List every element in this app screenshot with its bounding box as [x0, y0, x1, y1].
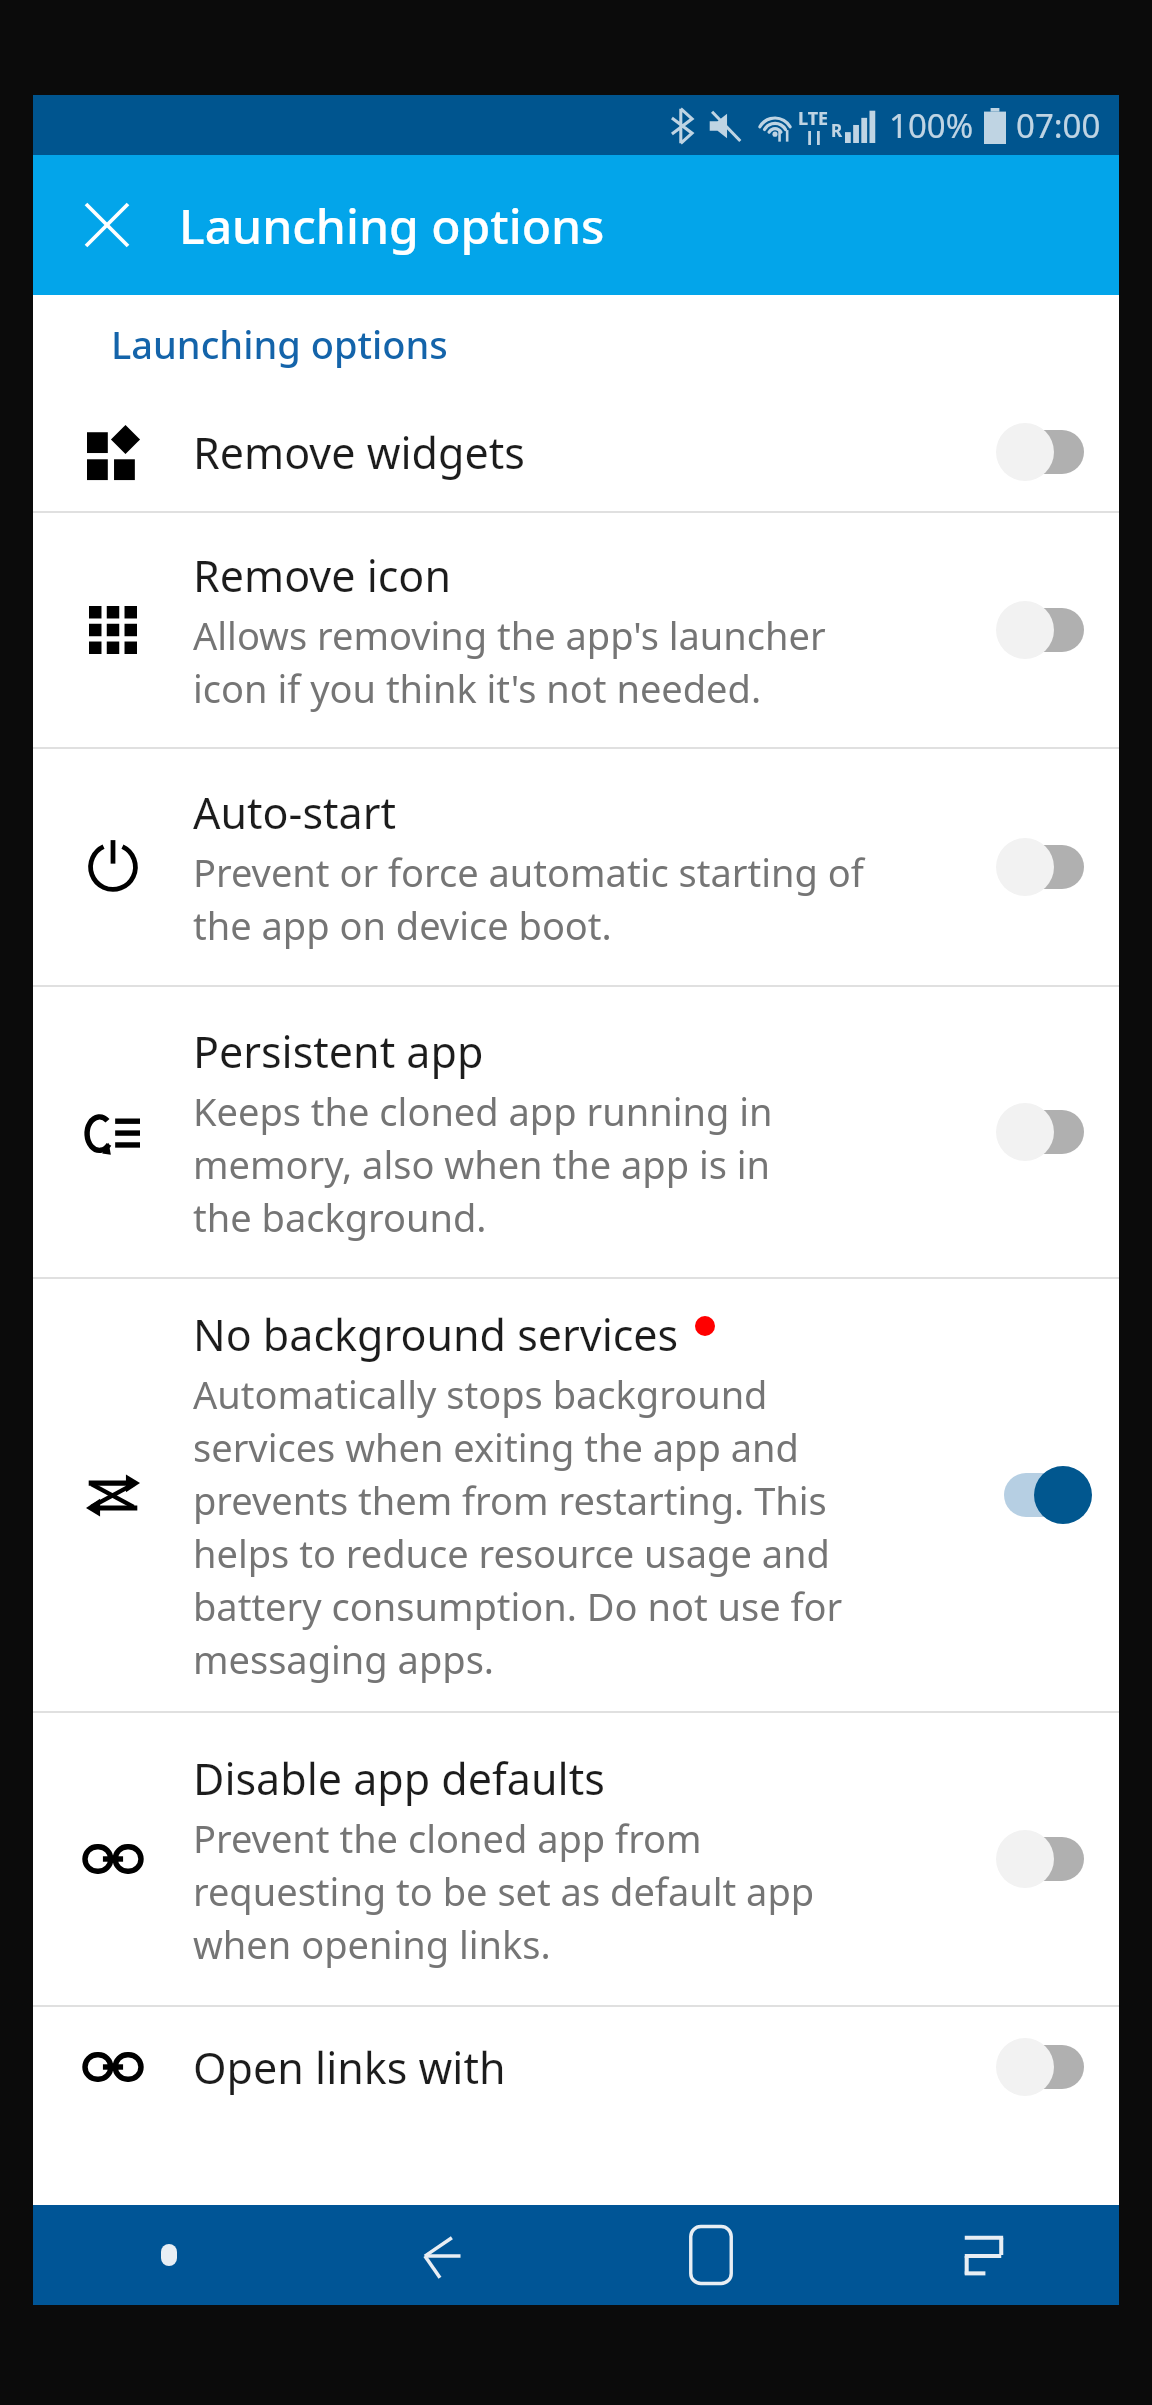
button[interactable]: Disable app defaults — [969, 1713, 1119, 2005]
staticText: Disable app defaults — [193, 1749, 605, 1808]
button[interactable]: Remove icon — [969, 513, 1119, 747]
button[interactable]: Persistent app — [969, 987, 1119, 1277]
staticText: Open links with — [193, 2038, 506, 2097]
staticText: Prevent or force automatic starting of t… — [193, 846, 864, 951]
button[interactable]: Menu dot — [33, 2205, 304, 2305]
staticText: Allows removing the app's launcher icon … — [193, 609, 826, 714]
staticText: No background services — [193, 1305, 679, 1364]
staticText: Keeps the cloned app running in memory, … — [193, 1085, 773, 1243]
button[interactable]: No background services — [33, 1279, 1119, 1711]
staticText: Launching options — [179, 193, 605, 258]
button[interactable]: Close — [67, 185, 147, 265]
button[interactable]: Back — [304, 2205, 575, 2305]
button[interactable]: No background services — [969, 1279, 1119, 1711]
button[interactable]: Disable app defaults — [33, 1713, 1119, 2005]
staticText: Auto-start — [193, 783, 396, 842]
staticText: 100% — [889, 103, 974, 148]
button[interactable]: Remove widgets — [969, 393, 1119, 511]
staticText: Prevent the cloned app from requesting t… — [193, 1812, 815, 1970]
button[interactable]: Remove widgets — [33, 393, 1119, 511]
button[interactable]: Recent apps — [847, 2205, 1119, 2305]
button[interactable]: Open links with — [33, 2007, 1119, 2127]
button[interactable]: Home — [575, 2205, 847, 2305]
button[interactable]: Auto-start — [969, 749, 1119, 985]
button[interactable]: Remove icon — [33, 513, 1119, 747]
button[interactable]: Auto-start — [33, 749, 1119, 985]
staticText: LTE — [798, 106, 829, 131]
button[interactable]: Persistent app — [33, 987, 1119, 1277]
staticText: Automatically stops background services … — [193, 1368, 843, 1685]
staticText: Remove icon — [193, 546, 451, 605]
staticText: 07:00 — [1016, 103, 1101, 148]
staticText: Launching options — [111, 318, 448, 370]
staticText: Remove widgets — [193, 423, 525, 482]
staticText: R — [831, 119, 843, 142]
staticText: Persistent app — [193, 1022, 484, 1081]
button[interactable]: Open links with — [969, 2007, 1119, 2127]
